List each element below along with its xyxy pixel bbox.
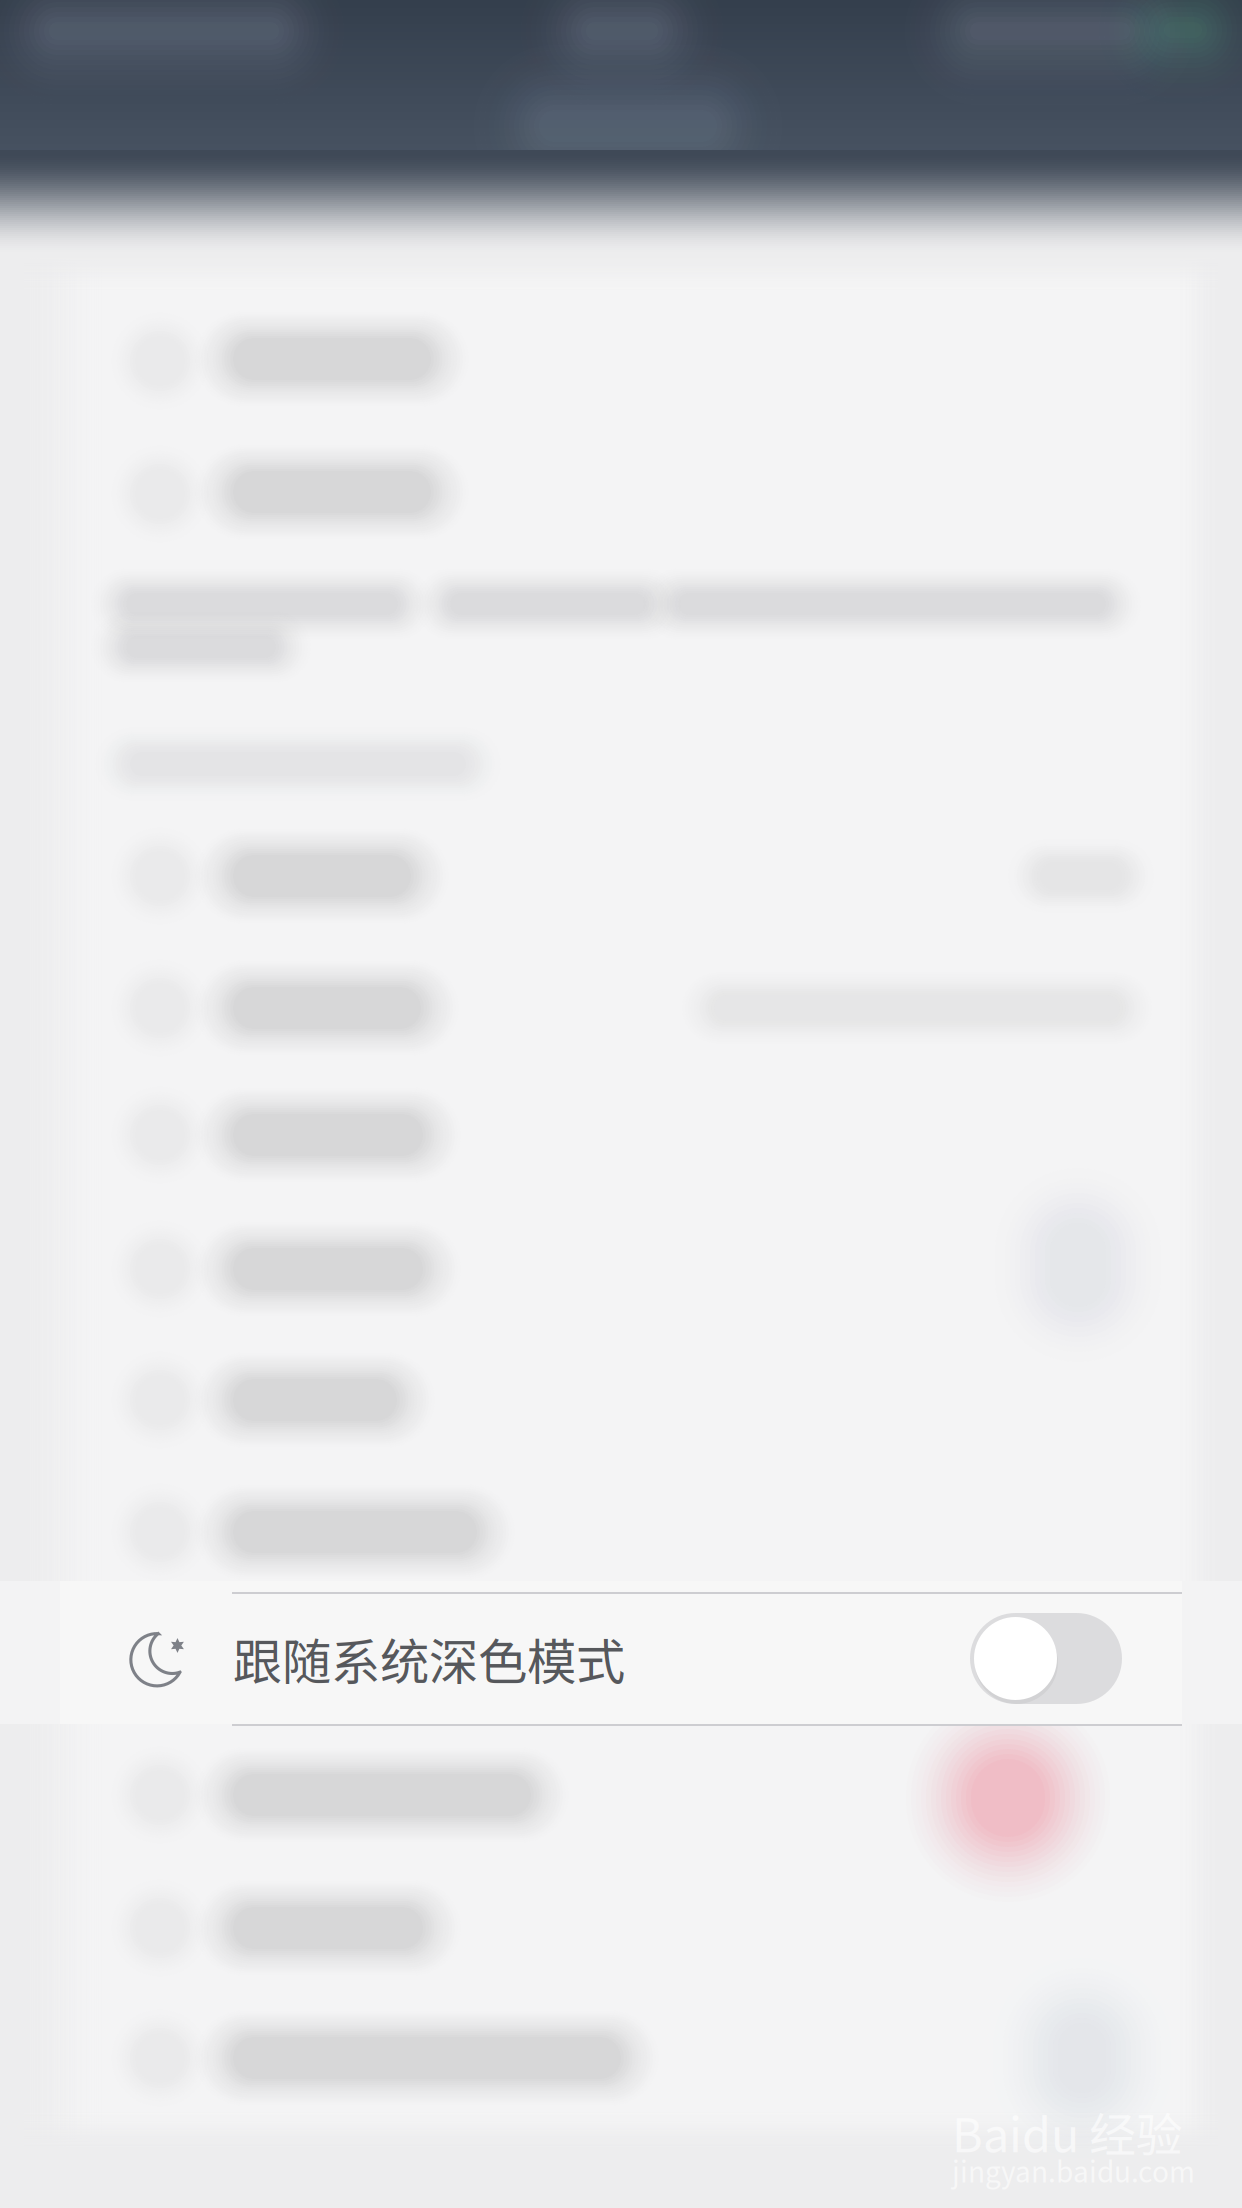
staticText: jingyan.baidu.com xyxy=(952,2150,1195,2190)
staticText: 跟随系统深色模式 xyxy=(233,1623,625,1694)
button[interactable]: 跟随系统深色模式 xyxy=(0,1593,1242,1724)
staticText: Baidu 经验 xyxy=(952,2098,1183,2166)
